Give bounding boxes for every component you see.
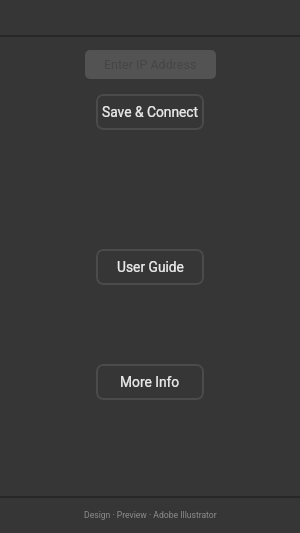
staticText: Design · Preview · Adobe Illustrator bbox=[84, 510, 217, 520]
staticText: More Info bbox=[120, 374, 180, 390]
staticText: Save & Connect bbox=[102, 104, 199, 120]
button[interactable]: More Info bbox=[96, 364, 204, 400]
button[interactable]: Enter IP Address bbox=[85, 50, 216, 79]
staticText: User Guide bbox=[117, 259, 184, 275]
staticText: Enter IP Address bbox=[104, 57, 197, 72]
button[interactable]: User Guide bbox=[96, 249, 204, 285]
button[interactable]: Save & Connect bbox=[96, 94, 204, 130]
